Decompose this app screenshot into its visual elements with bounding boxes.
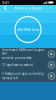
button[interactable]: Back <box>1 5 10 11</box>
staticText: 452 MB free <box>17 27 39 32</box>
button[interactable]: Info <box>46 5 55 11</box>
button[interactable]: 4 Background apps consuming <box>0 70 56 81</box>
staticText: sensitive process data <box>2 56 31 60</box>
staticText: 9:41 <box>2 0 9 5</box>
staticText: memory left <box>2 76 18 80</box>
staticText: Unreleased RAM used by apps and <box>2 48 44 55</box>
button[interactable]: Unreleased RAM used by apps and <box>0 48 56 59</box>
button[interactable]: 10 applications cached <box>0 59 56 70</box>
staticText: i <box>50 5 51 11</box>
staticText: 4 Background apps consuming <box>2 72 44 75</box>
staticText: Memory Boost <box>14 5 41 11</box>
staticText: 10 applications cached <box>2 63 33 67</box>
